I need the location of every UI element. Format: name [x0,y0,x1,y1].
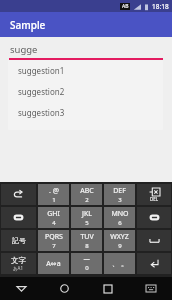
button[interactable]: Home [43,277,86,300]
button[interactable]: suggestion1 [8,60,163,81]
staticText: 記号 [12,236,26,245]
staticText: 8 [85,242,89,250]
button[interactable]: MNO [104,207,135,228]
button[interactable]: Left [1,207,36,228]
staticText: WXYZ [110,232,129,242]
button[interactable]: Right [137,207,171,228]
staticText: DEL [150,196,159,202]
staticText: 6 [118,219,122,227]
button[interactable]: GHI [38,207,69,228]
staticText: 3 [118,196,122,204]
button[interactable]: suggestion3 [8,102,163,123]
staticText: 、 。 [112,259,128,269]
staticText: DEF [113,186,126,196]
button[interactable]: Enter [137,253,171,274]
button[interactable]: TUV [71,230,102,251]
staticText: MNO [111,209,129,219]
staticText: 4 [52,219,56,227]
button[interactable]: 、 。 [104,253,135,274]
staticText: 5 [85,219,89,227]
staticText: 1 [52,196,56,204]
staticText: 文字 [11,256,26,265]
button[interactable]: A⇔a [38,253,69,274]
button[interactable]: 記号 [1,230,36,251]
staticText: 18:18 [152,2,169,11]
staticText: suggestion2 [18,86,65,97]
button[interactable]: Delete [137,184,171,205]
staticText: 9 [118,242,122,250]
button[interactable]: PQRS [38,230,69,251]
button[interactable]: sugge [9,43,163,60]
button[interactable]: Undo [1,184,36,205]
staticText: あA1 [13,265,24,271]
staticText: ー [83,255,90,264]
button[interactable]: ABC [71,184,102,205]
staticText: AB [122,3,129,10]
button[interactable]: WXYZ [104,230,135,251]
staticText: GHI [47,209,60,219]
staticText: Sample [10,18,46,32]
button[interactable]: Back [0,277,43,300]
staticText: ABC [80,186,94,196]
button[interactable]: Switch keyboard [129,277,172,300]
button[interactable]: DEF [104,184,135,205]
button[interactable]: JKL [71,207,102,228]
staticText: A⇔a [46,259,61,269]
staticText: 0 [85,264,89,272]
button[interactable]: . @ [38,184,69,205]
staticText: JKL [82,209,92,219]
staticText: 7 [52,242,56,250]
staticText: . @ [49,186,59,196]
staticText: PQRS [45,232,63,242]
button[interactable]: suggestion2 [8,81,163,102]
staticText: sugge [10,43,38,56]
button[interactable]: ー [71,253,102,274]
staticText: suggestion1 [18,65,65,76]
staticText: 2 [85,196,89,204]
staticText: suggestion3 [18,107,65,118]
staticText: TUV [80,232,94,242]
button[interactable]: Recents [86,277,129,300]
button[interactable]: 文字 [1,253,36,274]
button[interactable]: Space [137,230,171,251]
